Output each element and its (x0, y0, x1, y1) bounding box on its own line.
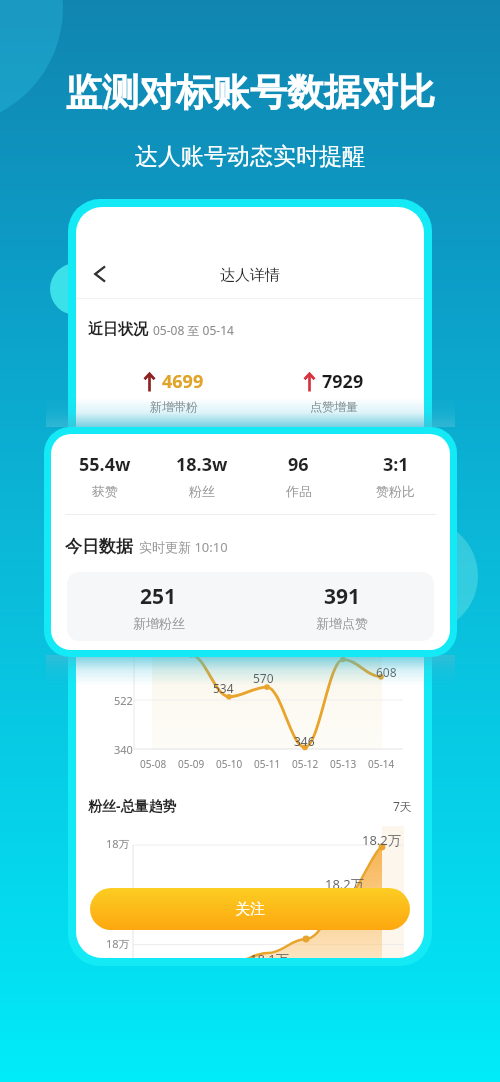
staticText: 05-11 (254, 757, 281, 771)
staticText: 05-13 (330, 757, 357, 771)
staticText: 达人详情 (220, 266, 280, 285)
staticText: 新增点赞 (316, 615, 368, 631)
staticText: 570 (253, 670, 274, 686)
staticText: 实时更新 10:10 (139, 538, 228, 556)
staticText: 监测对标账号数据对比 (65, 69, 435, 116)
button[interactable]: 关注 (90, 888, 410, 930)
staticText: 522 (114, 693, 133, 708)
staticText: 作品 (286, 483, 312, 499)
staticText: 18.2万 (362, 831, 401, 849)
staticText: 18万 (106, 936, 130, 951)
staticText: 今日数据 (65, 536, 133, 557)
staticText: 7929 (322, 369, 364, 394)
staticText: 18.2万 (325, 875, 364, 893)
button[interactable]: Back (86, 260, 114, 288)
staticText: 340 (114, 742, 133, 757)
staticText: 05-09 (178, 757, 205, 771)
staticText: 18.3w (176, 452, 228, 477)
staticText: 05-12 (292, 757, 319, 771)
staticText: 391 (324, 582, 361, 611)
staticText: 新增带粉 (150, 399, 198, 414)
staticText: 7天 (393, 798, 412, 814)
staticText: 达人账号动态实时提醒 (135, 142, 365, 171)
staticText: 获赞 (92, 483, 118, 499)
staticText: 3:1 (383, 452, 409, 477)
staticText: 346 (294, 733, 315, 749)
staticText: 18万 (106, 836, 130, 851)
staticText: 05-08 (140, 757, 167, 771)
staticText: 05-10 (216, 757, 243, 771)
staticText: 粉丝-总量趋势 (88, 796, 177, 815)
staticText: 55.4w (79, 452, 131, 477)
staticText: 粉丝 (189, 483, 215, 499)
staticText: 赞粉比 (376, 483, 415, 499)
staticText: 05-08 至 05-14 (153, 322, 234, 338)
staticText: 点赞增量 (310, 399, 358, 414)
staticText: 18.1万 (250, 950, 289, 958)
staticText: 534 (213, 680, 234, 696)
staticText: 新增粉丝 (133, 615, 185, 631)
staticText: 05-14 (368, 757, 395, 771)
staticText: 关注 (235, 900, 265, 919)
staticText: 近日状况 (88, 320, 148, 339)
staticText: 4699 (162, 369, 204, 394)
staticText: 96 (288, 452, 309, 477)
staticText: 608 (376, 664, 397, 680)
staticText: 251 (140, 582, 177, 611)
